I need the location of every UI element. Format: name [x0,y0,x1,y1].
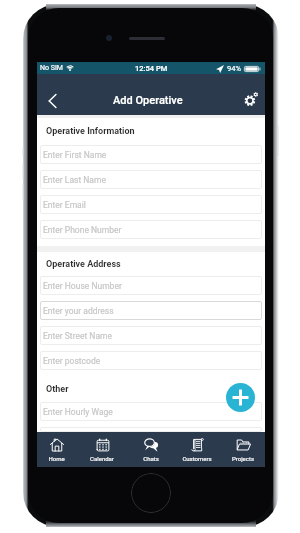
button[interactable]: Back [42,91,62,111]
staticText: Enter Email [43,200,86,210]
staticText: Enter Phone Number [43,225,122,235]
button[interactable]: Settings [243,91,259,107]
staticText: Enter First Name [43,150,107,160]
staticText: Chats [143,455,159,462]
button[interactable]: Customers [174,432,220,467]
button[interactable]: Calendar [79,432,125,467]
button[interactable]: Chats [128,432,174,467]
button[interactable]: Projects [220,432,266,467]
staticText: Add Operative [113,94,183,107]
staticText: Enter postcode [43,356,101,366]
button[interactable]: Enter postcode [40,351,262,370]
button[interactable]: Home [33,432,79,467]
staticText: 12:54 PM [135,64,168,73]
staticText: Operative Information [46,126,135,137]
button[interactable]: Enter Hourly Wage [40,402,262,421]
button[interactable] [40,427,262,432]
staticText: Enter your address [43,306,114,316]
staticText: Enter Last Name [43,175,106,185]
button[interactable]: Enter Street Name [40,326,262,345]
button[interactable]: Enter House Number [40,276,262,295]
button[interactable]: Enter Last Name [40,170,262,189]
staticText: Home [48,455,65,462]
staticText: Enter Street Name [43,331,112,341]
staticText: Customers [182,455,212,462]
staticText: 94% [227,64,241,73]
button[interactable]: Enter First Name [40,145,262,164]
staticText: Other [46,384,69,395]
staticText: Projects [232,455,254,462]
staticText: Calendar [90,455,114,462]
button[interactable]: Enter your address [40,301,262,320]
staticText: Enter House Number [43,281,122,291]
staticText: Operative Address [46,259,121,270]
staticText: No SIM [40,64,63,72]
button[interactable]: Add [226,383,255,412]
staticText: Enter Hourly Wage [43,407,113,417]
button[interactable]: Enter Phone Number [40,220,262,239]
button[interactable]: Enter Email [40,195,262,214]
